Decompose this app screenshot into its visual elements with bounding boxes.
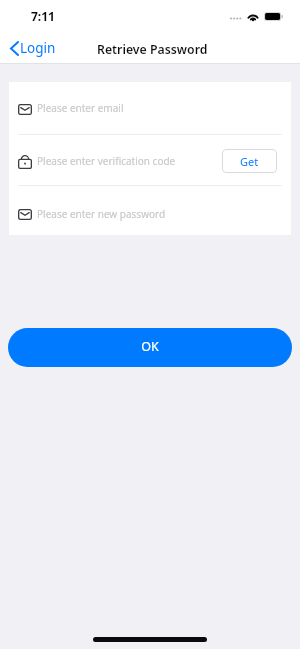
button[interactable]: Please enter email xyxy=(9,82,291,134)
button[interactable]: Login xyxy=(0,33,66,61)
staticText: Please enter email xyxy=(37,101,124,115)
staticText: Retrieve Password xyxy=(97,41,208,58)
staticText: Please enter new password xyxy=(37,207,166,221)
staticText: Get xyxy=(240,154,259,169)
button[interactable]: Please enter verification code xyxy=(9,135,291,185)
staticText: 7:11 xyxy=(31,8,55,24)
button[interactable]: Get xyxy=(222,149,277,173)
staticText: Please enter verification code xyxy=(37,154,176,168)
staticText: Login xyxy=(20,39,56,57)
button[interactable]: OK xyxy=(8,328,292,367)
staticText: OK xyxy=(141,338,159,355)
button[interactable]: Please enter new password xyxy=(9,186,291,235)
